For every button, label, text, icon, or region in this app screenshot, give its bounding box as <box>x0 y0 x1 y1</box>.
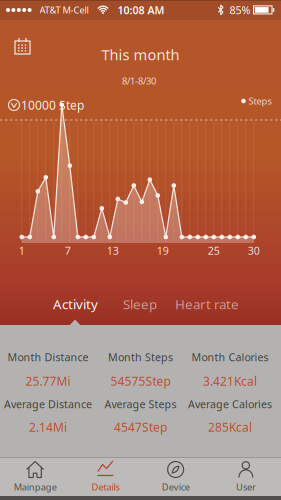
staticText: Details <box>91 481 119 493</box>
staticText: 25.77Mi <box>25 373 70 389</box>
staticText: Steps <box>248 95 271 107</box>
staticText: 1 <box>19 243 25 258</box>
staticText: 10:08 AM <box>117 3 164 17</box>
staticText: 3.421Kcal <box>203 373 257 389</box>
staticText: Month Steps <box>108 350 173 364</box>
staticText: 13 <box>107 243 119 258</box>
staticText: 7 <box>65 243 71 258</box>
staticText: This month <box>101 45 179 64</box>
button[interactable]: Details <box>70 458 140 500</box>
button[interactable]: Device <box>140 458 211 500</box>
staticText: Month Distance <box>7 350 88 364</box>
staticText: Average Calories <box>188 397 272 411</box>
staticText: Average Steps <box>104 397 176 411</box>
staticText: Activity <box>53 295 98 313</box>
staticText: Sleep <box>123 295 157 313</box>
staticText: AT&T M-Cell <box>39 4 88 16</box>
staticText: 4547Step <box>114 419 167 435</box>
staticText: 10000 Step <box>21 97 84 113</box>
button[interactable]: Heart rate <box>162 293 252 315</box>
staticText: 285Kcal <box>208 419 252 435</box>
staticText: 8/1-8/30 <box>122 75 156 87</box>
staticText: 54575Step <box>110 373 170 389</box>
button[interactable]: Mainpage <box>0 458 70 500</box>
staticText: Month Calories <box>191 350 268 364</box>
staticText: 30 <box>248 243 260 258</box>
button[interactable]: User <box>211 458 281 500</box>
button[interactable]: Calendar <box>0 0 45 66</box>
staticText: User <box>236 481 256 493</box>
staticText: 19 <box>157 243 169 258</box>
staticText: 85% <box>229 3 250 17</box>
staticText: 2.14Mi <box>29 419 67 435</box>
button[interactable]: Sleep <box>115 293 165 315</box>
staticText: Mainpage <box>14 481 57 493</box>
staticText: Heart rate <box>175 295 239 313</box>
button[interactable]: Activity <box>43 293 107 315</box>
staticText: Device <box>162 481 190 493</box>
staticText: 25 <box>208 243 220 258</box>
staticText: Average Distance <box>4 397 92 411</box>
